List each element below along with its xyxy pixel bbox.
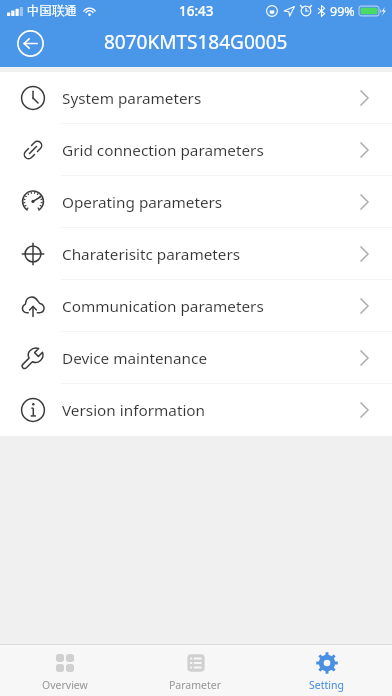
staticText: Charaterisitc parameters (62, 244, 241, 265)
button[interactable]: Charaterisitc parameters (0, 228, 392, 280)
button[interactable]: Grid connection parameters (0, 124, 392, 176)
button[interactable]: Operating parameters (0, 176, 392, 228)
staticText: Version information (62, 400, 206, 421)
staticText: 99% (330, 3, 355, 20)
staticText: 8070KMTS184G0005 (104, 29, 288, 55)
staticText: System parameters (62, 88, 202, 109)
button[interactable]: Overview (0, 645, 130, 696)
staticText: 中国联通 (27, 3, 77, 19)
button[interactable]: Setting (261, 645, 392, 696)
button[interactable]: System parameters (0, 72, 392, 124)
staticText: Parameter (169, 678, 222, 692)
staticText: Device maintenance (62, 348, 208, 369)
button[interactable]: Version information (0, 384, 392, 436)
staticText: Communication parameters (62, 296, 264, 317)
staticText: 16:43 (179, 2, 214, 20)
staticText: Grid connection parameters (62, 140, 264, 161)
button[interactable]: Back (13, 26, 48, 61)
staticText: Setting (309, 678, 344, 692)
staticText: Operating parameters (62, 192, 223, 213)
staticText: Overview (42, 678, 88, 692)
button[interactable]: Communication parameters (0, 280, 392, 332)
button[interactable]: Device maintenance (0, 332, 392, 384)
button[interactable]: Parameter (130, 645, 261, 696)
